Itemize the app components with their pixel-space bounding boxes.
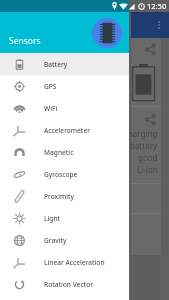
staticText: Accelerometer <box>44 126 90 135</box>
staticText: WiFi <box>44 104 58 113</box>
staticText: Battery <box>44 60 68 69</box>
button[interactable]: Battery app <box>131 12 169 38</box>
staticText: Magnetic <box>44 148 74 157</box>
staticText: Sensors <box>9 35 41 47</box>
button[interactable]: WiFi <box>0 97 129 119</box>
staticText: 12:50 <box>147 1 167 11</box>
button[interactable]: GPS <box>0 75 129 97</box>
staticText: GPS <box>44 82 57 91</box>
button[interactable]: Battery <box>0 53 129 75</box>
button[interactable]: Light <box>0 207 129 229</box>
button[interactable]: Magnetic <box>0 141 129 163</box>
staticText: Li-ion <box>137 164 158 175</box>
staticText: Rotation Vector <box>44 280 93 289</box>
button[interactable]: Gyroscope <box>0 163 129 185</box>
button[interactable]: Rotation Vector <box>0 273 129 295</box>
staticText: charging <box>124 128 158 139</box>
staticText: good <box>138 152 158 163</box>
staticText: Linear Acceleration <box>44 258 105 267</box>
staticText: Proximity <box>44 192 74 201</box>
staticText: Gyroscope <box>44 170 78 179</box>
button[interactable]: Proximity <box>0 185 129 207</box>
staticText: Light <box>44 214 61 223</box>
button[interactable]: Accelerometer <box>0 119 129 141</box>
button[interactable]: Gravity <box>0 229 129 251</box>
staticText: Gravity <box>44 236 67 245</box>
button[interactable]: Linear Acceleration <box>0 251 129 273</box>
button[interactable]: App icon <box>92 18 122 48</box>
staticText: battery <box>130 140 158 151</box>
